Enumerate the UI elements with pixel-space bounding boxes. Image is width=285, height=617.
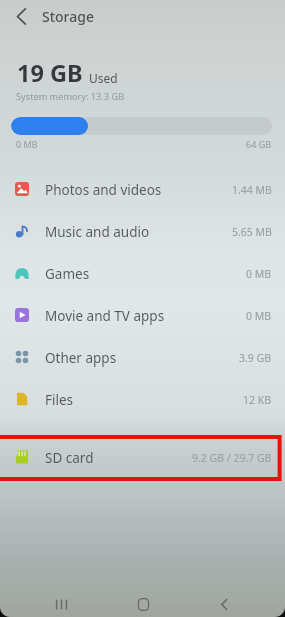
button[interactable]: Recents <box>41 587 81 617</box>
staticText: 3.9 GB <box>239 351 272 365</box>
staticText: SD card <box>45 449 94 467</box>
staticText: 12 KB <box>243 393 272 407</box>
button[interactable]: Photos and videos <box>0 169 285 211</box>
button[interactable]: Files <box>0 379 285 421</box>
staticText: Photos and videos <box>45 181 162 199</box>
staticText: Music and audio <box>45 223 150 241</box>
staticText: System memory: 13.3 GB <box>16 90 125 103</box>
staticText: Games <box>45 265 90 283</box>
staticText: Storage <box>42 7 94 26</box>
button[interactable]: Other apps <box>0 337 285 379</box>
staticText: 64 GB <box>246 138 272 150</box>
staticText: 1.44 MB <box>232 183 272 197</box>
button[interactable]: Games <box>0 253 285 295</box>
staticText: Other apps <box>45 349 117 367</box>
staticText: 5.65 MB <box>232 225 272 239</box>
button[interactable]: Back <box>204 587 244 617</box>
staticText: 0 MB <box>246 267 272 281</box>
staticText: 0 MB <box>16 138 38 150</box>
staticText: Movie and TV apps <box>45 307 165 325</box>
button[interactable]: SD card <box>0 437 285 479</box>
button[interactable]: Music and audio <box>0 211 285 253</box>
staticText: 19 GB <box>17 57 83 89</box>
staticText: Files <box>45 391 74 409</box>
staticText: Used <box>89 70 118 86</box>
button[interactable]: Back <box>9 4 33 28</box>
button[interactable]: Home <box>123 587 163 617</box>
staticText: 9.2 GB / 29.7 GB <box>192 451 272 465</box>
button[interactable]: Movie and TV apps <box>0 295 285 337</box>
staticText: 0 MB <box>246 309 272 323</box>
